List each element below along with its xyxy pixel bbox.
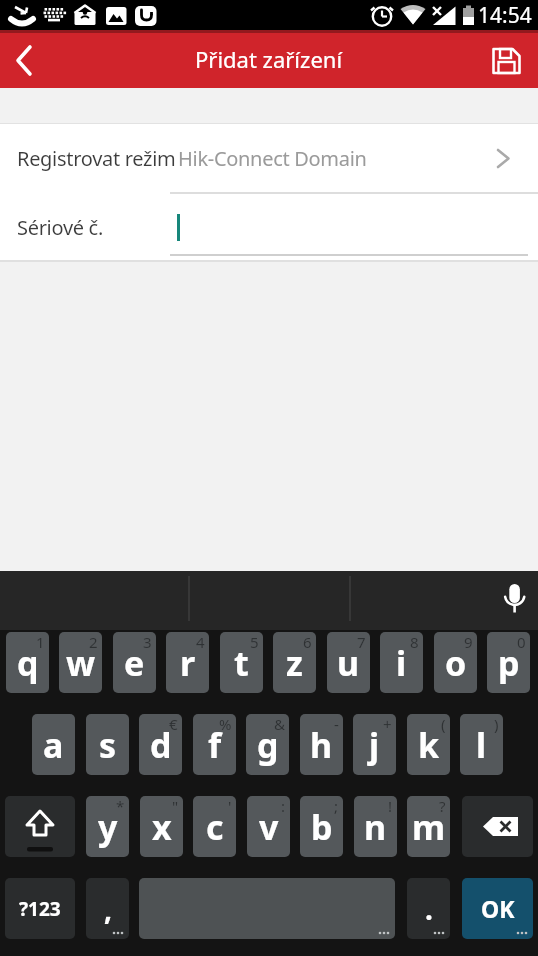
button[interactable]: i <box>380 632 423 693</box>
staticText: x <box>152 804 172 850</box>
staticText: 7 <box>357 632 366 652</box>
staticText: ; <box>334 796 339 816</box>
button[interactable]: g <box>246 714 289 775</box>
button[interactable]: t <box>220 632 263 693</box>
staticText: ?123 <box>19 896 61 922</box>
staticText: i <box>396 640 407 686</box>
staticText: 0 <box>517 632 526 652</box>
staticText: r <box>180 640 196 686</box>
staticText: & <box>274 714 285 734</box>
staticText: v <box>259 804 279 850</box>
button[interactable]: n <box>354 796 397 857</box>
button[interactable]: d <box>139 714 182 775</box>
button[interactable]: x <box>140 796 183 857</box>
button[interactable]: w <box>59 632 102 693</box>
staticText: - <box>334 714 339 734</box>
button[interactable]: y <box>86 796 129 857</box>
button[interactable]: e <box>113 632 156 693</box>
button[interactable]: m <box>407 796 450 857</box>
button[interactable]: u <box>327 632 370 693</box>
button[interactable]: , <box>86 878 129 939</box>
staticText: 2 <box>89 632 98 652</box>
staticText: s <box>99 722 117 768</box>
button[interactable]: l <box>460 714 503 775</box>
staticText: Hik-Connect Domain <box>178 145 367 172</box>
staticText: % <box>219 714 232 734</box>
staticText: g <box>257 722 279 768</box>
staticText: ! <box>388 796 393 816</box>
button[interactable]: b <box>300 796 343 857</box>
staticText: a <box>43 722 64 768</box>
staticText: " <box>172 796 179 816</box>
staticText: t <box>234 640 249 686</box>
staticText: Přidat zařízení <box>195 44 343 74</box>
staticText: OK <box>481 893 515 924</box>
button[interactable]: z <box>273 632 316 693</box>
staticText: 9 <box>464 632 473 652</box>
button[interactable]: p <box>487 632 530 693</box>
staticText: Registrovat režim <box>17 145 176 172</box>
staticText: . <box>425 890 433 928</box>
staticText: y <box>98 804 118 850</box>
staticText: c <box>206 804 224 850</box>
button[interactable]: r <box>166 632 209 693</box>
staticText: Sériové č. <box>17 214 103 241</box>
button[interactable]: k <box>407 714 450 775</box>
button[interactable] <box>477 30 535 88</box>
staticText: € <box>169 714 178 734</box>
button[interactable]: f <box>193 714 236 775</box>
staticText: : <box>281 796 286 816</box>
button[interactable]: OK <box>462 878 533 939</box>
staticText: j <box>369 722 380 768</box>
staticText: 4 <box>196 632 205 652</box>
staticText: f <box>208 722 222 768</box>
button[interactable]: s <box>86 714 129 775</box>
staticText: * <box>116 796 125 816</box>
staticText: n <box>364 804 387 850</box>
staticText: z <box>286 640 303 686</box>
staticText: l <box>476 722 487 768</box>
staticText: 1 <box>36 632 45 652</box>
staticText: q <box>17 640 39 686</box>
staticText: p <box>498 640 520 686</box>
button[interactable] <box>5 796 75 857</box>
staticText: 5 <box>250 632 259 652</box>
staticText: h <box>310 722 333 768</box>
button[interactable]: . <box>407 878 450 939</box>
button[interactable]: o <box>434 632 477 693</box>
staticText: m <box>412 804 446 850</box>
button[interactable]: c <box>193 796 236 857</box>
staticText: ' <box>228 796 232 816</box>
staticText: ( <box>441 714 446 734</box>
staticText: b <box>311 804 333 850</box>
staticText: w <box>66 640 96 686</box>
button[interactable]: v <box>247 796 290 857</box>
button[interactable]: Sériové č. <box>0 194 538 260</box>
button[interactable]: ?123 <box>5 878 75 939</box>
staticText: k <box>418 722 440 768</box>
staticText: ? <box>439 796 446 816</box>
staticText: d <box>150 722 172 768</box>
staticText: 6 <box>303 632 312 652</box>
staticText: u <box>337 640 360 686</box>
staticText: o <box>445 640 467 686</box>
staticText: 3 <box>143 632 152 652</box>
button[interactable] <box>462 796 533 857</box>
button[interactable]: Registrovat režim <box>0 124 538 192</box>
button[interactable] <box>139 878 395 939</box>
staticText: 14:54 <box>478 1 532 30</box>
staticText: , <box>104 890 112 928</box>
button[interactable]: a <box>32 714 75 775</box>
staticText: + <box>383 714 392 734</box>
button[interactable]: h <box>300 714 343 775</box>
button[interactable]: j <box>353 714 396 775</box>
button[interactable]: q <box>6 632 49 693</box>
staticText: 8 <box>410 632 419 652</box>
staticText: e <box>124 640 145 686</box>
button[interactable] <box>0 30 56 88</box>
staticText: ) <box>494 714 499 734</box>
